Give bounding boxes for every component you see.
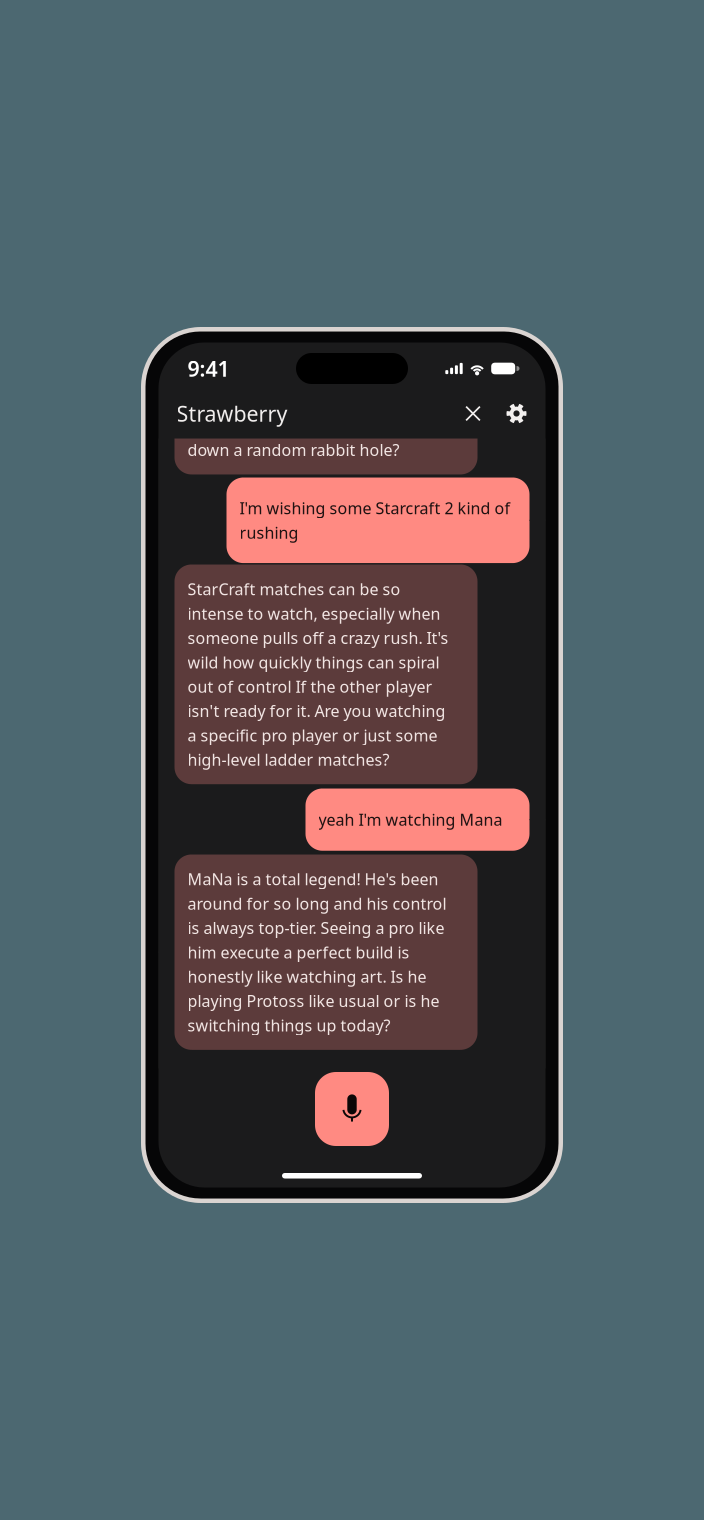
button[interactable]: Voice input (315, 1072, 389, 1146)
staticText: Hi! What are you thinking about? Feel fr… (187, 390, 438, 460)
staticText: 9:41 (187, 354, 229, 383)
staticText: MaNa is a total legend! He's been around… (187, 868, 446, 1036)
staticText: I'm wishing some Starcraft 2 kind of rus… (239, 497, 510, 543)
staticText: yeah I'm watching Mana (318, 809, 502, 830)
button[interactable]: Settings (496, 391, 536, 435)
staticText: Strawberry (176, 399, 287, 428)
button[interactable]: Close (449, 391, 496, 435)
staticText: StarCraft matches can be so intense to w… (187, 578, 448, 770)
